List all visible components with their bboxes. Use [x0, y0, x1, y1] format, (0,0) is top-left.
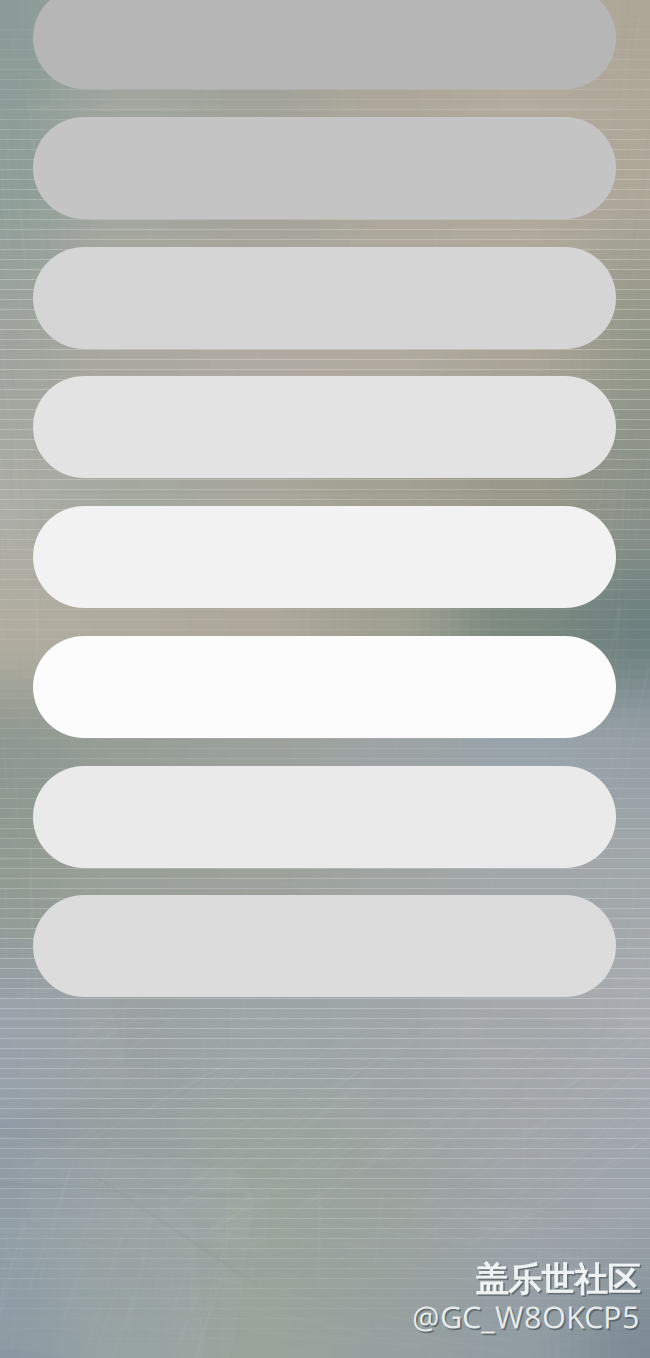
button[interactable]: Shortcut slot 1	[33, 0, 616, 89]
staticText: @GC_W8OKCP5	[414, 1298, 642, 1339]
staticText: @GC_W8OKCP5	[412, 1296, 640, 1337]
staticText: 盖乐世社区	[477, 1261, 642, 1302]
button[interactable]: Shortcut slot 6	[33, 636, 616, 738]
button[interactable]: Shortcut slot 2	[33, 117, 616, 219]
button[interactable]: Shortcut slot 8	[33, 895, 616, 997]
button[interactable]: Shortcut slot 5	[33, 506, 616, 608]
button[interactable]: Shortcut slot 3	[33, 247, 616, 349]
button[interactable]: Shortcut slot 7	[33, 766, 616, 868]
staticText: 盖乐世社区	[475, 1259, 640, 1300]
button[interactable]: Shortcut slot 4	[33, 376, 616, 478]
